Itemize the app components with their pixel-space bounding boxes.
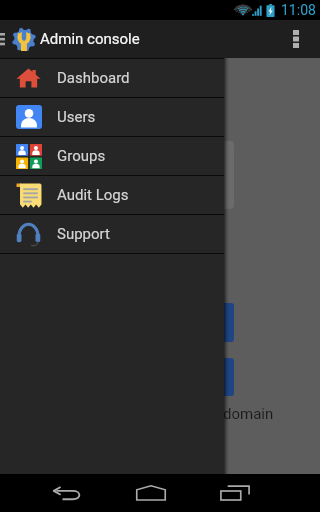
- button[interactable]: Dashboard: [0, 59, 224, 97]
- staticText: 11:08: [281, 2, 316, 18]
- staticText: domain: [223, 405, 274, 423]
- button[interactable]: Home: [121, 474, 181, 512]
- staticText: Audit Logs: [57, 186, 129, 204]
- staticText: Admin console: [40, 30, 140, 48]
- button[interactable]: Open navigation drawer: [0, 20, 5, 58]
- staticText: Dashboard: [57, 69, 130, 87]
- button[interactable]: [140, 141, 234, 209]
- button[interactable]: [140, 358, 234, 396]
- button[interactable]: [140, 303, 234, 342]
- staticText: Support: [57, 225, 110, 243]
- staticText: Groups: [57, 147, 106, 165]
- button[interactable]: Back: [37, 474, 97, 512]
- staticText: Users: [57, 108, 96, 126]
- button[interactable]: Groups: [0, 137, 224, 175]
- button[interactable]: Support: [0, 215, 224, 253]
- button[interactable]: Recent apps: [205, 474, 265, 512]
- button[interactable]: More options: [274, 20, 320, 58]
- button[interactable]: Audit Logs: [0, 176, 224, 214]
- button[interactable]: Users: [0, 98, 224, 136]
